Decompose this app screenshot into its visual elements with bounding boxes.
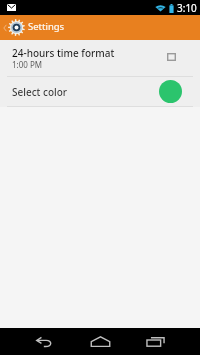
button[interactable]: Recent apps [131,328,179,355]
staticText: 3:10 [177,1,197,15]
staticText: Settings [28,20,65,33]
button[interactable]: Back [19,328,67,355]
button[interactable]: Navigate up [0,15,200,40]
staticText: 1:00 PM [12,59,43,70]
staticText: Select color [12,85,159,99]
button[interactable]: 24-hours time format [0,40,200,76]
button[interactable]: Select color [0,77,200,106]
button[interactable]: Home [76,328,124,355]
staticText: 24-hours time format [12,46,115,60]
